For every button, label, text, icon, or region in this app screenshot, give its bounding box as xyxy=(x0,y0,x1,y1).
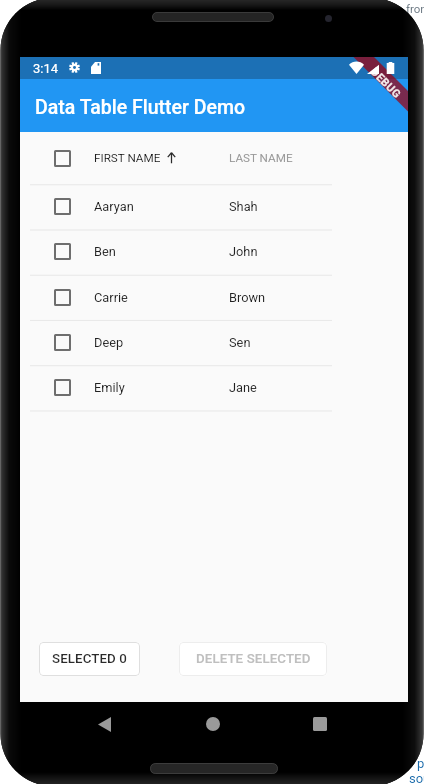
staticText: DEBUG xyxy=(368,65,404,102)
button[interactable]: Select row xyxy=(30,320,332,365)
button[interactable]: Select row xyxy=(30,132,332,184)
staticText: 3:14 xyxy=(33,61,59,76)
button[interactable]: Select row xyxy=(54,243,71,260)
button[interactable]: Select row xyxy=(30,184,332,229)
button[interactable]: Back xyxy=(89,709,119,739)
staticText: Sen xyxy=(229,335,251,350)
button[interactable]: Select row xyxy=(54,150,71,167)
button[interactable]: Select row xyxy=(30,365,332,410)
button[interactable]: DELETE SELECTED xyxy=(179,642,327,676)
button[interactable]: Select row xyxy=(54,379,71,396)
staticText: sou xyxy=(409,771,424,784)
staticText: Emily xyxy=(94,380,125,395)
staticText: SELECTED 0 xyxy=(52,651,127,667)
staticText: Data Table Flutter Demo xyxy=(35,96,245,119)
staticText: Deep xyxy=(94,335,124,350)
staticText: John xyxy=(229,244,258,259)
button[interactable]: Recents xyxy=(305,709,335,739)
staticText: Carrie xyxy=(94,290,128,305)
staticText: fron xyxy=(406,2,424,15)
button[interactable]: Select row xyxy=(54,198,71,215)
staticText: Jane xyxy=(229,380,257,395)
button[interactable]: Select row xyxy=(30,229,332,274)
button[interactable]: Select row xyxy=(30,275,332,320)
staticText: p xyxy=(417,756,424,771)
button[interactable]: Home xyxy=(198,709,228,739)
staticText: Shah xyxy=(229,199,258,214)
button[interactable]: Select row xyxy=(54,334,71,351)
button[interactable]: SELECTED 0 xyxy=(39,642,140,676)
staticText: LAST NAME xyxy=(229,151,293,165)
staticText: Aaryan xyxy=(94,199,134,214)
staticText: Brown xyxy=(229,290,266,305)
staticText: Ben xyxy=(94,244,116,259)
button[interactable]: Select row xyxy=(54,289,71,306)
staticText: DELETE SELECTED xyxy=(196,651,311,667)
staticText: FIRST NAME xyxy=(94,151,161,165)
